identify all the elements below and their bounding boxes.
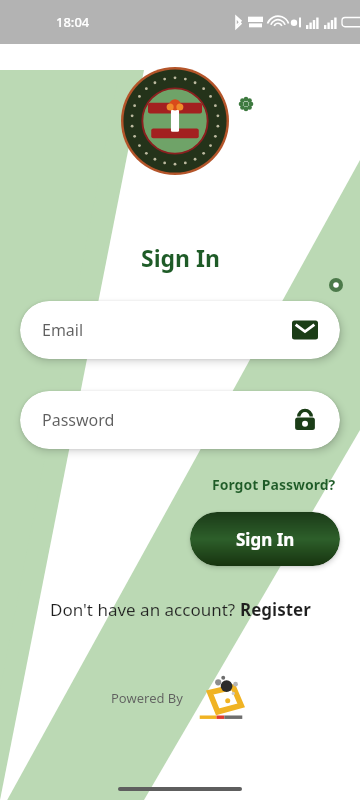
- staticText: Password: [42, 409, 115, 431]
- button[interactable]: Email: [20, 301, 340, 359]
- other: Email: [292, 317, 318, 343]
- other: Password: [292, 407, 318, 433]
- staticText: Don't have an account?: [50, 598, 240, 621]
- other: TrackMySchool: [193, 675, 249, 721]
- button[interactable]: Forgot Password?: [208, 471, 340, 498]
- staticText: Email: [42, 319, 84, 341]
- staticText: Powered By: [111, 689, 183, 707]
- staticText: Sign In: [141, 242, 220, 273]
- staticText: 18:04: [56, 13, 90, 31]
- button[interactable]: Sign In: [190, 512, 340, 566]
- button[interactable]: Don't have an account?: [0, 594, 360, 625]
- staticText: Sign In: [236, 528, 295, 551]
- staticText: Register: [240, 598, 311, 621]
- other: School logo: [121, 67, 229, 175]
- staticText: Forgot Password?: [212, 475, 336, 494]
- button[interactable]: Password: [20, 391, 340, 449]
